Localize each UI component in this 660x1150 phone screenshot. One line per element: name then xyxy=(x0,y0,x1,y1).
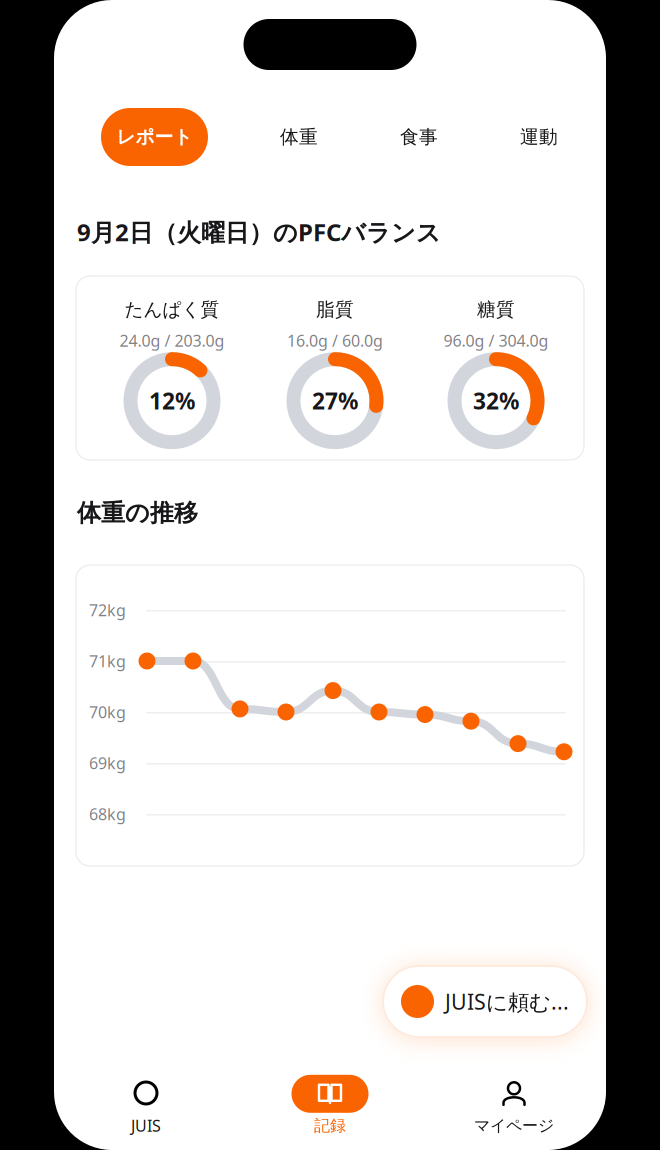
staticText: 72kg xyxy=(89,599,126,621)
staticText: 運動 xyxy=(520,125,558,148)
staticText: 96.0g / 304.0g xyxy=(443,330,548,351)
staticText: マイページ xyxy=(474,1116,554,1135)
button[interactable]: レポート xyxy=(101,108,208,166)
staticText: 脂質 xyxy=(316,298,354,321)
staticText: 9月2日（火曜日）のPFCバランス xyxy=(77,216,441,248)
button[interactable]: 食事 xyxy=(390,111,448,162)
button[interactable]: 運動 xyxy=(510,111,568,162)
staticText: 71kg xyxy=(89,650,126,672)
staticText: 糖質 xyxy=(477,298,515,321)
staticText: 12% xyxy=(149,386,195,416)
button[interactable]: マイページ xyxy=(422,1075,606,1135)
staticText: 16.0g / 60.0g xyxy=(287,330,383,351)
button[interactable]: JUISに頼む... xyxy=(382,965,588,1038)
staticText: 70kg xyxy=(89,701,126,723)
staticText: 体重 xyxy=(280,125,318,148)
staticText: JUISに頼む... xyxy=(445,987,569,1016)
staticText: 69kg xyxy=(89,752,126,774)
staticText: 食事 xyxy=(400,125,438,148)
staticText: たんぱく質 xyxy=(124,298,219,321)
staticText: 記録 xyxy=(314,1116,346,1135)
staticText: レポート xyxy=(116,125,192,148)
staticText: 68kg xyxy=(89,803,126,825)
staticText: 24.0g / 203.0g xyxy=(119,330,224,351)
staticText: JUIS xyxy=(131,1115,161,1136)
staticText: 体重の推移 xyxy=(77,498,198,528)
button[interactable]: JUIS xyxy=(54,1074,238,1136)
staticText: 32% xyxy=(473,386,519,416)
button[interactable]: 体重 xyxy=(270,111,328,162)
staticText: 27% xyxy=(312,386,358,416)
button[interactable]: 記録 xyxy=(238,1075,422,1135)
